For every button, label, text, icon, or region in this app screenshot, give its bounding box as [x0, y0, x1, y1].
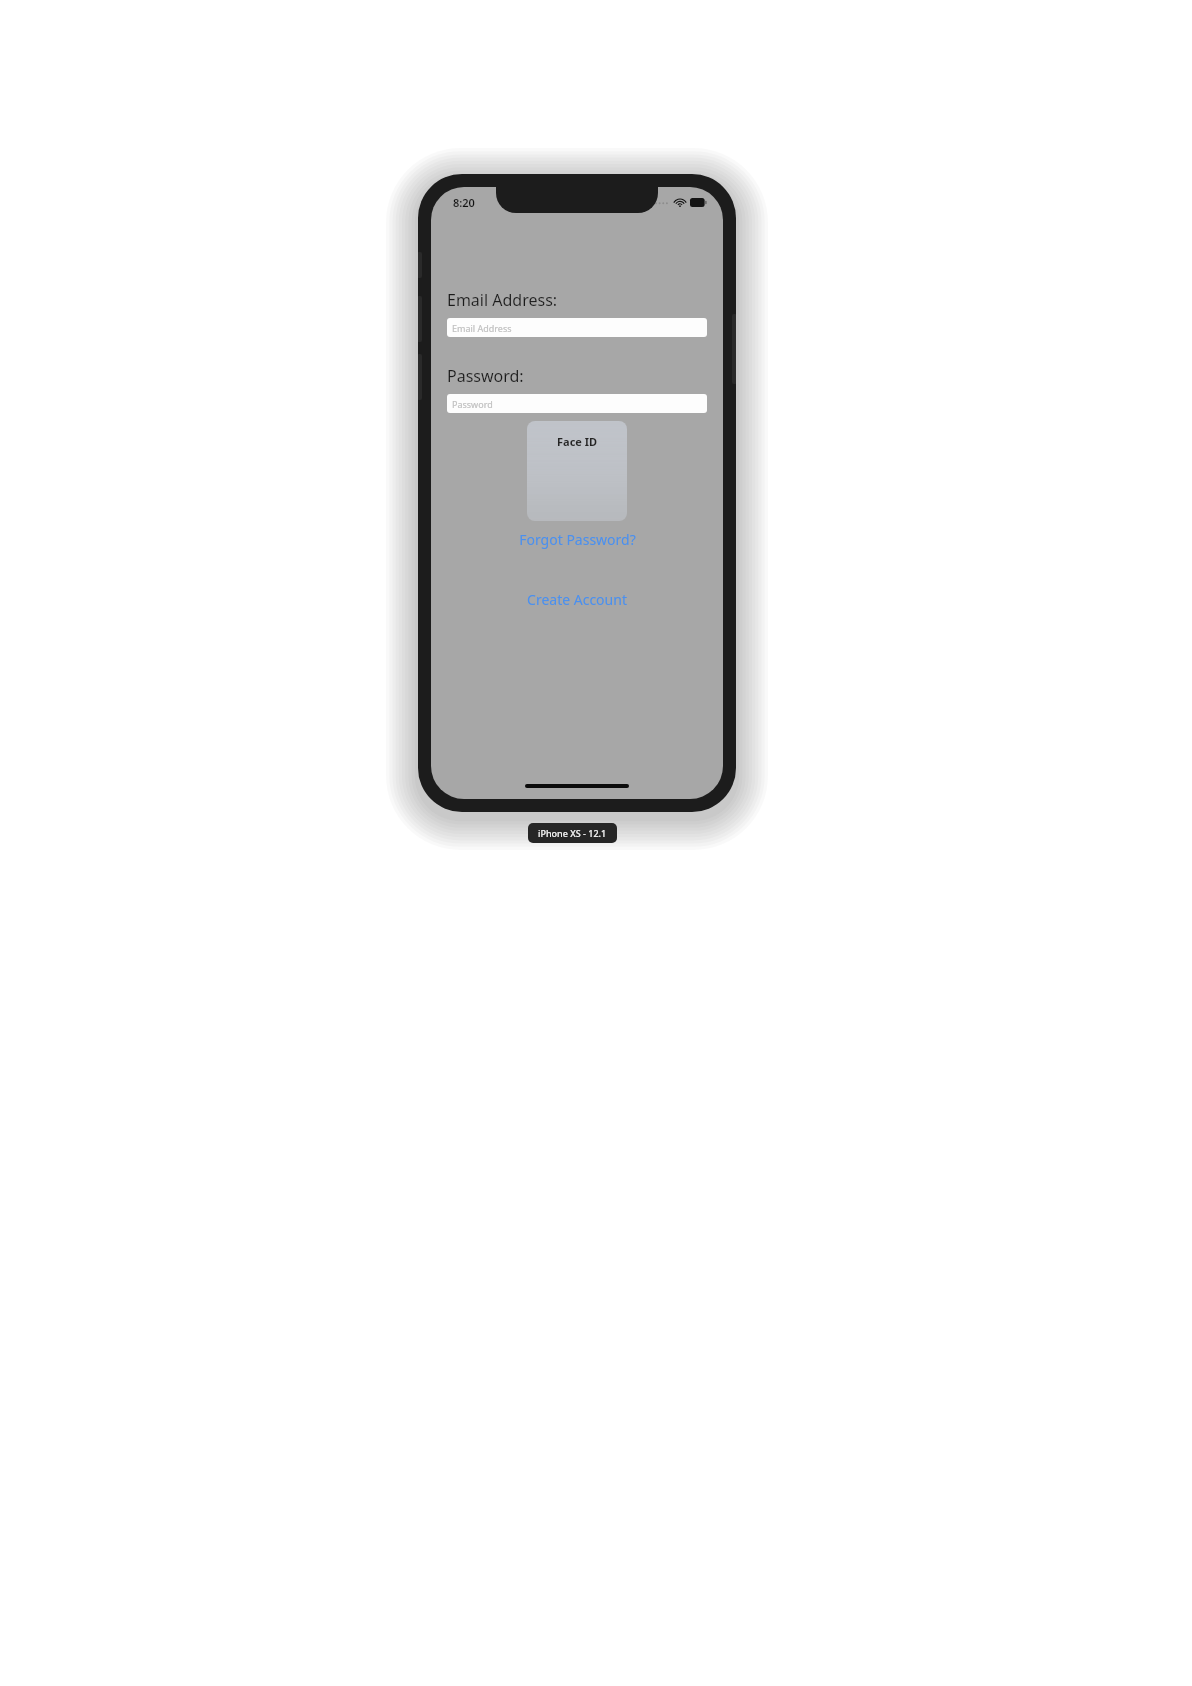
staticText: Email Address — [452, 322, 512, 334]
staticText: Password: — [447, 365, 524, 387]
staticText: Face ID — [557, 434, 598, 449]
button[interactable]: Create Account — [521, 588, 633, 611]
button[interactable]: Face ID — [527, 421, 627, 521]
staticText: Forgot Password? — [519, 530, 636, 549]
staticText: 8:20 — [453, 195, 475, 210]
staticText: iPhone XS - 12.1 — [538, 827, 607, 839]
button[interactable]: Password — [447, 394, 707, 413]
staticText: Create Account — [527, 590, 627, 609]
staticText: Email Address: — [447, 289, 558, 311]
other: Home indicator — [525, 784, 629, 788]
button[interactable]: Forgot Password? — [513, 528, 642, 551]
button[interactable]: Email Address — [447, 318, 707, 337]
staticText: Password — [452, 398, 493, 410]
